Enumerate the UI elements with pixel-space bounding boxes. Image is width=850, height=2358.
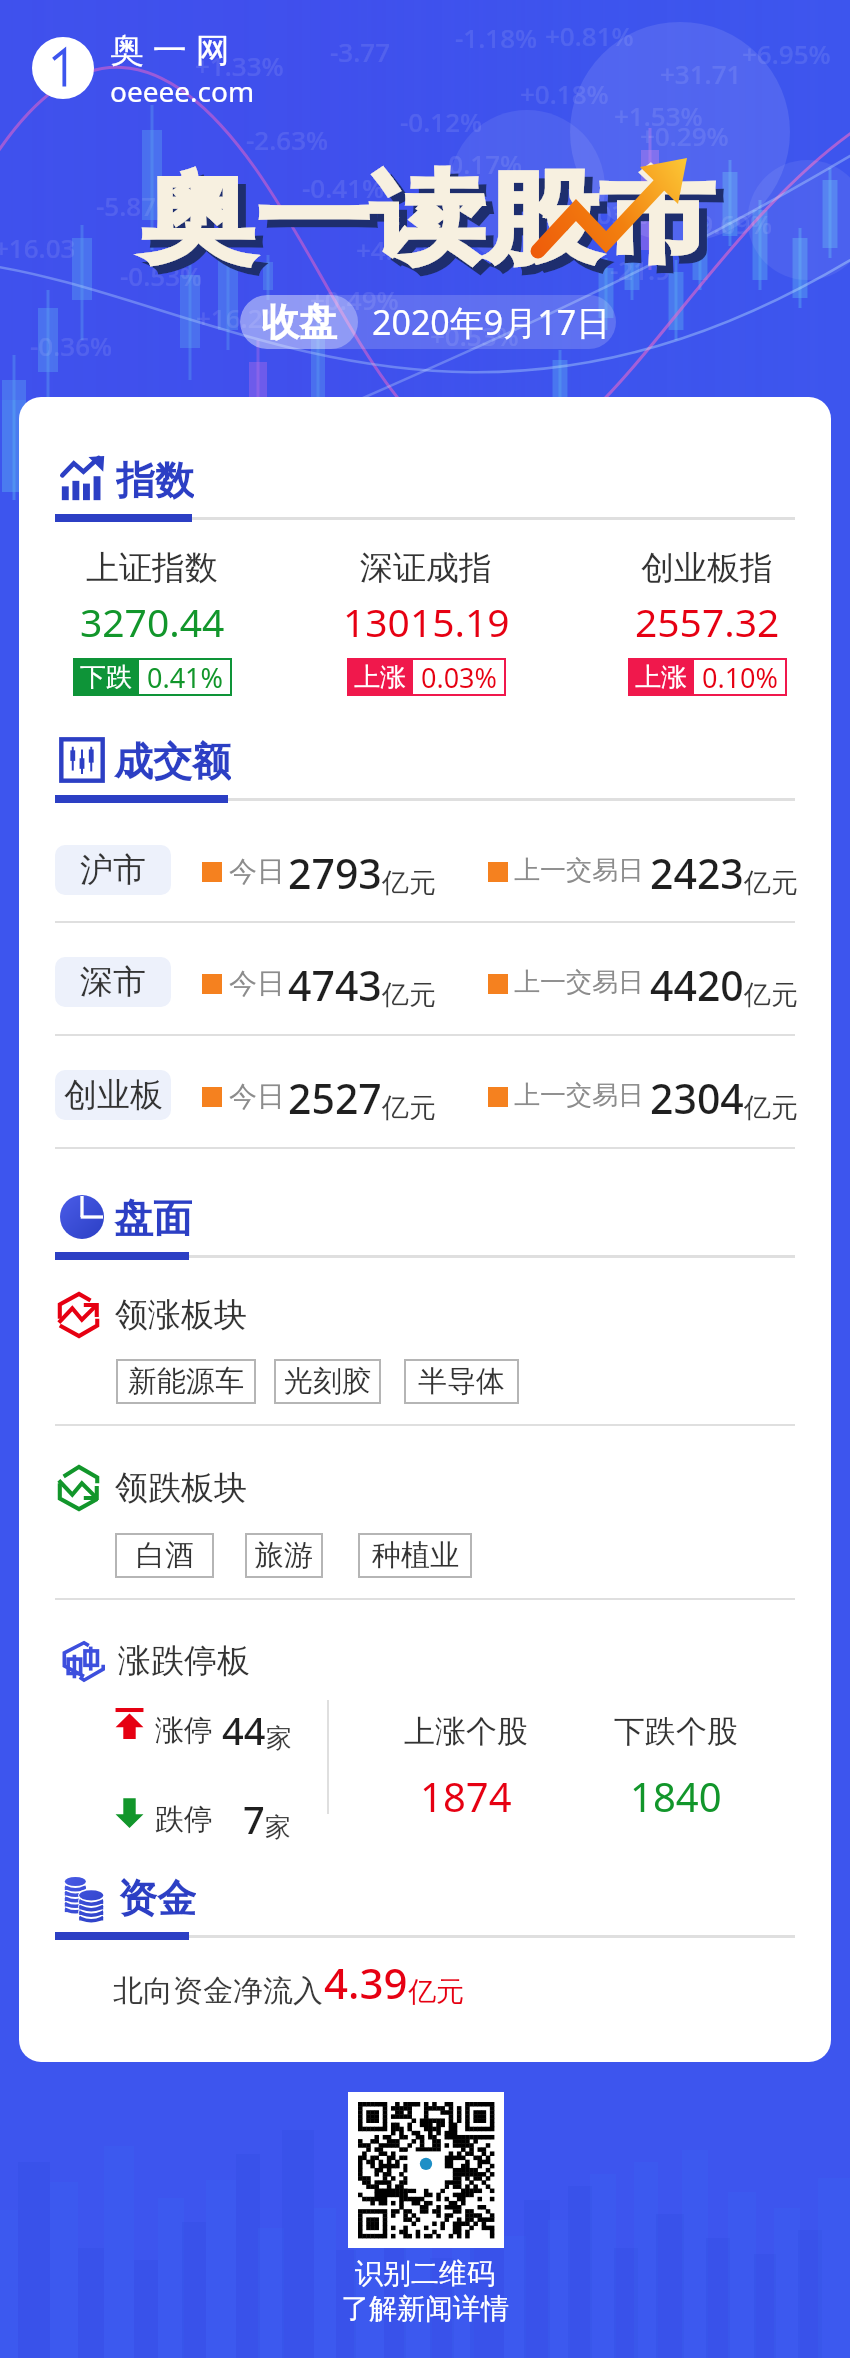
staticText: 领涨板块: [115, 1294, 247, 1336]
staticText: 创业板: [64, 1074, 163, 1116]
staticText: 沪市: [80, 849, 146, 891]
staticText: 下跌: [80, 661, 132, 694]
button[interactable]: 创业板指: [557, 547, 850, 696]
staticText: 下跌个股: [614, 1712, 738, 1751]
staticText: 亿元: [408, 1974, 464, 2009]
button[interactable]: 半导体: [404, 1359, 519, 1404]
staticText: 亿元: [744, 978, 798, 1012]
staticText: +31.71: [660, 56, 742, 91]
staticText: +0.18%: [520, 76, 609, 111]
staticText: -5.87%: [96, 188, 179, 223]
button[interactable]: 深市: [55, 957, 171, 1007]
staticText: 0.10%: [702, 659, 779, 696]
staticText: 3270.44: [80, 595, 225, 648]
staticText: 亿元: [744, 1091, 798, 1125]
staticText: 收盘: [261, 298, 337, 346]
staticText: 7: [243, 1793, 265, 1845]
staticText: +1.53%: [614, 98, 703, 133]
staticText: 今日: [229, 854, 285, 889]
staticText: 2527: [288, 1070, 382, 1126]
staticText: 2423: [650, 845, 744, 901]
button[interactable]: 上证指数: [2, 547, 302, 696]
staticText: 上一交易日: [514, 966, 644, 999]
staticText: 2304: [650, 1070, 744, 1126]
staticText: +6.95%: [742, 36, 831, 71]
button[interactable]: 新能源车: [116, 1359, 256, 1404]
staticText: -0.12%: [400, 104, 483, 139]
staticText: 白酒: [136, 1537, 194, 1574]
staticText: 旅游: [255, 1537, 313, 1574]
staticText: 盘面: [114, 1194, 192, 1240]
staticText: 了解新闻详情: [341, 2291, 509, 2326]
staticText: -1.18%: [455, 20, 538, 55]
staticText: +4.45%: [356, 232, 445, 267]
button[interactable]: 奥 一 网: [32, 26, 255, 110]
staticText: 奥一读股市: [141, 158, 714, 281]
staticText: +16.21: [196, 300, 278, 335]
button[interactable]: 种植业: [358, 1533, 472, 1578]
staticText: 涨停: [155, 1712, 213, 1749]
staticText: -3.77: [330, 34, 391, 69]
staticText: 2793: [288, 845, 382, 901]
staticText: 今日: [229, 966, 285, 1001]
staticText: +0.29%: [640, 118, 729, 153]
staticText: 奥 一 网: [110, 26, 230, 72]
staticText: 4420: [650, 957, 744, 1013]
button[interactable]: 创业板: [55, 1070, 171, 1120]
staticText: 跌停: [155, 1801, 213, 1838]
staticText: 亿元: [382, 866, 436, 900]
staticText: 新能源车: [128, 1363, 244, 1400]
button[interactable]: 旅游: [245, 1533, 323, 1578]
button[interactable]: 沪市: [55, 845, 171, 895]
staticText: 家: [265, 1811, 291, 1844]
staticText: -2.63%: [246, 122, 329, 157]
staticText: 亿元: [382, 978, 436, 1012]
staticText: 4.39: [324, 1954, 408, 2011]
staticText: 13015.19: [343, 595, 510, 648]
staticText: 识别二维码: [355, 2256, 495, 2291]
staticText: 2557.32: [635, 595, 780, 648]
staticText: 上一交易日: [514, 1079, 644, 1112]
staticText: -0.17%: [440, 146, 523, 181]
staticText: +0.49%: [310, 282, 399, 317]
staticText: 深市: [80, 961, 146, 1003]
button[interactable]: 光刻胶: [274, 1359, 381, 1404]
staticText: +1.33%: [195, 48, 284, 83]
staticText: 深证成指: [360, 547, 492, 589]
staticText: 1874: [420, 1769, 512, 1823]
staticText: 光刻胶: [284, 1363, 371, 1400]
staticText: 0.41%: [147, 659, 224, 696]
staticText: +0.53%: [430, 318, 519, 353]
staticText: 家: [266, 1722, 292, 1755]
staticText: -21.9: [610, 252, 671, 287]
staticText: 2020年9月17日: [372, 299, 611, 345]
button[interactable]: 深证成指: [276, 547, 576, 696]
staticText: 上涨: [635, 661, 687, 694]
staticText: +16.03: [0, 230, 76, 265]
staticText: 上证指数: [86, 547, 218, 589]
staticText: 4743: [288, 957, 382, 1013]
staticText: +0.81%: [545, 18, 634, 53]
staticText: 种植业: [372, 1537, 459, 1574]
staticText: 亿元: [744, 866, 798, 900]
staticText: 指数: [116, 456, 194, 502]
staticText: 上一交易日: [514, 854, 644, 887]
staticText: -0.36%: [30, 328, 113, 363]
staticText: 半导体: [418, 1363, 505, 1400]
staticText: -0.53%: [120, 258, 203, 293]
staticText: 创业板指: [641, 547, 773, 589]
staticText: 资金: [118, 1874, 196, 1920]
staticText: 成交额: [114, 737, 231, 783]
staticText: 上涨个股: [404, 1712, 528, 1751]
staticText: 领跌板块: [115, 1467, 247, 1509]
button[interactable]: 收盘: [240, 295, 616, 349]
staticText: -0.41%: [302, 170, 385, 205]
staticText: 亿元: [382, 1091, 436, 1125]
button[interactable]: QR code, scan for details: [348, 2092, 504, 2248]
staticText: 今日: [229, 1079, 285, 1114]
staticText: -9.69%: [690, 206, 773, 241]
button[interactable]: 白酒: [115, 1533, 214, 1578]
staticText: 奥一读股市: [149, 166, 722, 289]
staticText: +2.03%: [560, 196, 649, 231]
staticText: 0.03%: [421, 659, 498, 696]
